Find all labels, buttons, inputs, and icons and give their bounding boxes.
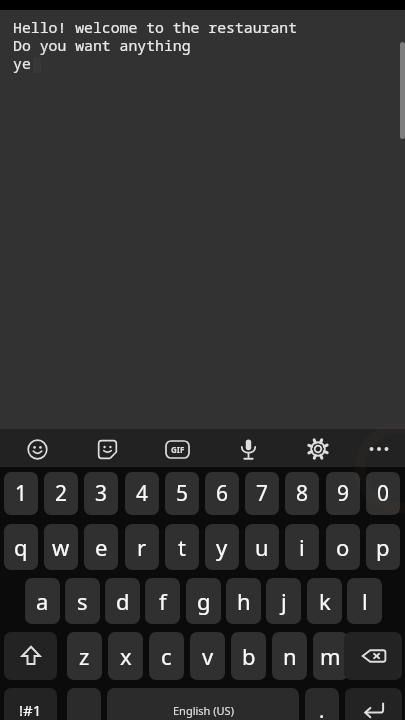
staticText: 2 bbox=[55, 479, 68, 508]
staticText: f bbox=[159, 586, 167, 616]
staticText: 6 bbox=[216, 479, 229, 508]
button[interactable] bbox=[91, 433, 123, 465]
button[interactable]: GIF bbox=[161, 433, 193, 465]
staticText: 5 bbox=[176, 479, 189, 508]
staticText: q bbox=[14, 532, 28, 562]
button[interactable]: e bbox=[84, 524, 118, 570]
staticText: m bbox=[320, 641, 341, 671]
staticText: 1 bbox=[15, 479, 28, 508]
button[interactable]: a bbox=[25, 578, 60, 624]
staticText: k bbox=[319, 586, 331, 616]
button[interactable]: 1 bbox=[4, 472, 38, 515]
staticText: i bbox=[299, 532, 305, 562]
staticText: 3 bbox=[95, 479, 108, 508]
button[interactable] bbox=[67, 688, 101, 720]
staticText: p bbox=[376, 532, 390, 562]
staticText: . bbox=[319, 697, 325, 720]
staticText: Do you want anything bbox=[13, 35, 191, 55]
button[interactable]: c bbox=[149, 632, 184, 680]
button[interactable]: j bbox=[266, 578, 301, 624]
button[interactable]: 3 bbox=[84, 472, 118, 515]
button[interactable] bbox=[344, 632, 402, 680]
staticText: w bbox=[52, 532, 70, 562]
button[interactable]: s bbox=[65, 578, 100, 624]
button[interactable]: 8 bbox=[285, 472, 319, 515]
staticText: s bbox=[77, 586, 88, 616]
button[interactable]: 9 bbox=[326, 472, 360, 515]
staticText: g bbox=[197, 586, 211, 616]
button[interactable]: f bbox=[145, 578, 180, 624]
button[interactable] bbox=[21, 433, 53, 465]
button[interactable] bbox=[363, 433, 395, 465]
staticText: r bbox=[137, 532, 147, 562]
button[interactable]: l bbox=[347, 578, 382, 624]
button[interactable] bbox=[345, 688, 402, 720]
staticText: u bbox=[255, 532, 269, 562]
staticText: l bbox=[362, 586, 368, 616]
staticText: 4 bbox=[136, 479, 149, 508]
button[interactable]: p bbox=[366, 524, 400, 570]
button[interactable]: z bbox=[67, 632, 102, 680]
staticText: a bbox=[36, 586, 49, 616]
button[interactable] bbox=[302, 433, 334, 465]
button[interactable]: 7 bbox=[245, 472, 279, 515]
button[interactable]: r bbox=[125, 524, 159, 570]
staticText: j bbox=[281, 586, 287, 616]
button[interactable]: o bbox=[326, 524, 360, 570]
staticText: 0 bbox=[377, 479, 390, 508]
staticText: English (US) bbox=[173, 703, 234, 718]
button[interactable] bbox=[4, 632, 57, 680]
button[interactable]: 0 bbox=[366, 472, 400, 515]
staticText: y bbox=[216, 532, 228, 562]
staticText: !#1 bbox=[19, 700, 42, 720]
button[interactable]: k bbox=[307, 578, 342, 624]
button[interactable]: d bbox=[105, 578, 140, 624]
staticText: v bbox=[202, 641, 214, 671]
button[interactable]: i bbox=[285, 524, 319, 570]
staticText: GIF bbox=[171, 444, 185, 455]
staticText: Hello! welcome to the restaurant bbox=[13, 17, 298, 37]
staticText: e bbox=[95, 532, 108, 562]
button[interactable]: 2 bbox=[44, 472, 78, 515]
staticText: 8 bbox=[296, 479, 309, 508]
button[interactable]: n bbox=[272, 632, 307, 680]
staticText: t bbox=[178, 532, 186, 562]
staticText: n bbox=[283, 641, 297, 671]
button[interactable]: x bbox=[108, 632, 143, 680]
button[interactable]: h bbox=[226, 578, 261, 624]
button[interactable]: m bbox=[313, 632, 348, 680]
staticText: h bbox=[237, 586, 251, 616]
staticText: x bbox=[120, 641, 132, 671]
staticText: z bbox=[79, 641, 90, 671]
button[interactable]: v bbox=[190, 632, 225, 680]
button[interactable]: g bbox=[186, 578, 221, 624]
button[interactable]: !#1 bbox=[4, 688, 57, 720]
staticText: 7 bbox=[256, 479, 269, 508]
staticText: c bbox=[161, 641, 172, 671]
staticText: b bbox=[242, 641, 256, 671]
button[interactable]: English (US) bbox=[107, 688, 299, 720]
button[interactable]: 5 bbox=[165, 472, 199, 515]
button[interactable]: t bbox=[165, 524, 199, 570]
staticText: ye bbox=[13, 53, 31, 73]
button[interactable]: 4 bbox=[125, 472, 159, 515]
staticText: o bbox=[336, 532, 350, 562]
button[interactable]: b bbox=[231, 632, 266, 680]
staticText: d bbox=[116, 586, 130, 616]
button[interactable]: y bbox=[205, 524, 239, 570]
button[interactable]: q bbox=[4, 524, 38, 570]
staticText: 9 bbox=[337, 479, 350, 508]
button[interactable]: 6 bbox=[205, 472, 239, 515]
button[interactable] bbox=[232, 433, 264, 465]
button[interactable]: . bbox=[305, 688, 339, 720]
button[interactable]: w bbox=[44, 524, 78, 570]
button[interactable]: u bbox=[245, 524, 279, 570]
